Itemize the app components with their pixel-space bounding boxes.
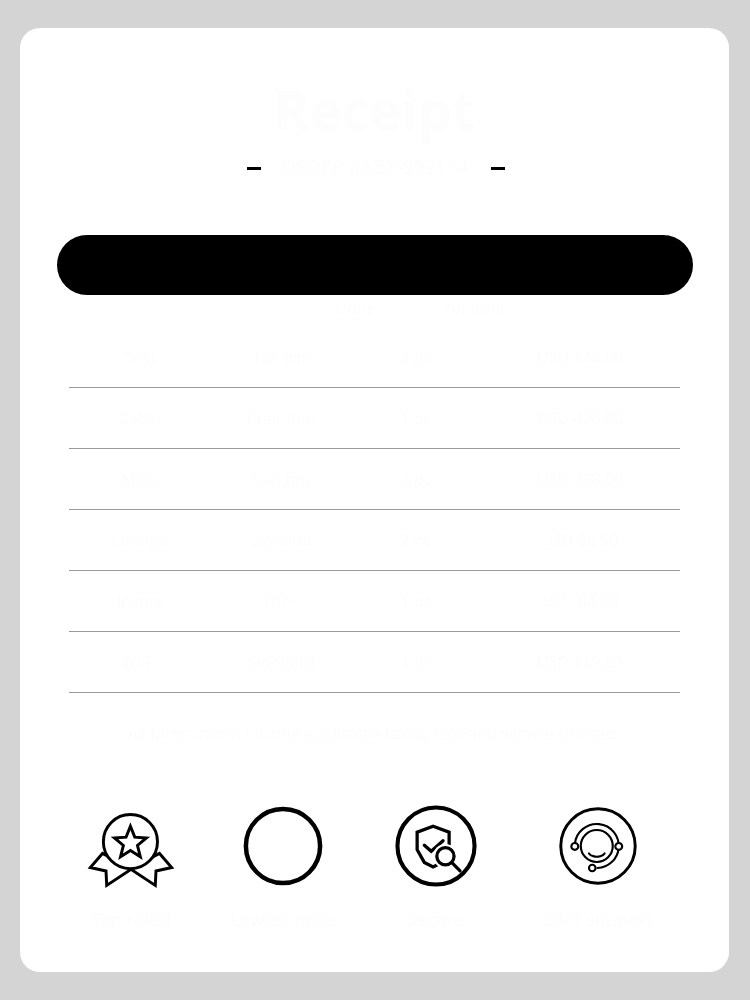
- button[interactable]: Top rated: [73, 805, 189, 932]
- staticText: TOTAL PAID $ 1,248.00: [57, 253, 693, 283]
- button[interactable]: Lowest price: [225, 805, 341, 932]
- button[interactable]: Secure: [378, 805, 494, 932]
- button[interactable]: 24/7 support: [540, 805, 656, 932]
- staticText: ORDER #ABX‑992134: [20, 154, 729, 180]
- button[interactable]: Total paid: [57, 235, 693, 295]
